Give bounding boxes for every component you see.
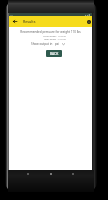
- staticText: psi: [55, 42, 60, 46]
- button[interactable]: Back: [9, 16, 20, 27]
- staticText: Recommended pressure for weight 110 lbs: [20, 30, 81, 34]
- staticText: Rear wheel : 115 PSI: [44, 38, 66, 41]
- staticText: Show output in: [31, 42, 53, 46]
- staticText: •••: [10, 13, 13, 16]
- staticText: Results: [23, 19, 36, 24]
- staticText: Front wheel : 110 PSI: [43, 35, 66, 38]
- button[interactable]: psi: [55, 42, 65, 46]
- staticText: ▴ ▴ ▮: [85, 13, 91, 16]
- staticText: BACK: [50, 52, 59, 56]
- button[interactable]: BACK: [46, 50, 62, 57]
- button[interactable]: Info: [86, 16, 92, 27]
